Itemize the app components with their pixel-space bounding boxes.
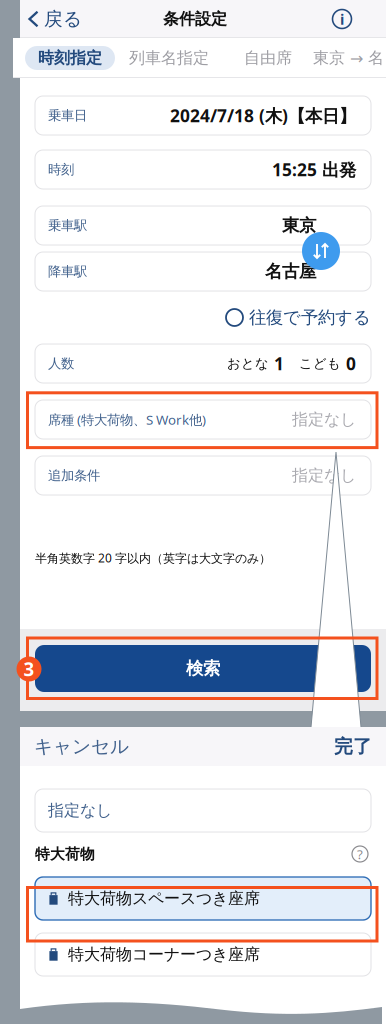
staticText: 自由席	[244, 48, 292, 68]
staticText: 指定なし	[48, 801, 112, 820]
button[interactable]: 完了	[320, 727, 386, 766]
staticText: 特大荷物コーナーつき座席	[68, 945, 260, 964]
staticText: 15:25 出発	[272, 158, 356, 181]
button[interactable]: 列車名指定	[115, 46, 223, 70]
staticText: 検索	[186, 658, 220, 679]
staticText: 戻る	[44, 7, 82, 30]
button[interactable]: 人数	[35, 344, 371, 383]
button[interactable]: 降車駅	[35, 252, 371, 291]
button[interactable]: 乗車日	[35, 96, 371, 135]
staticText: 東京 → 名	[313, 48, 384, 68]
staticText: 乗車日	[48, 107, 87, 124]
button[interactable]: Swap departure and arrival stations	[302, 232, 340, 270]
staticText: 0	[346, 352, 356, 375]
staticText: 名古屋	[265, 261, 316, 282]
staticText: 1	[274, 352, 284, 375]
staticText: おとな	[227, 355, 269, 372]
staticText: i	[340, 9, 344, 29]
staticText: こども	[299, 355, 341, 372]
staticText: 半角英数字 20 字以内（英字は大文字のみ）	[35, 550, 271, 566]
button[interactable]: 東京 → 名	[313, 46, 386, 70]
staticText: 2024/7/18 (木)【本日】	[170, 104, 356, 127]
staticText: 特大荷物	[35, 845, 95, 863]
staticText: 指定なし	[292, 410, 356, 429]
button[interactable]: 特大荷物スペースつき座席	[35, 877, 371, 920]
staticText: 指定なし	[292, 466, 356, 485]
button[interactable]: 戻る	[20, 1, 90, 37]
staticText: 3	[23, 657, 34, 681]
staticText: 列車名指定	[129, 48, 209, 68]
staticText: ?	[357, 845, 363, 863]
button[interactable]: 乗車駅	[35, 206, 371, 245]
staticText: 往復で予約する	[249, 307, 371, 328]
staticText: 席種 (特大荷物、S Work他)	[48, 411, 206, 428]
button[interactable]: 特大荷物コーナーつき座席	[35, 933, 371, 976]
staticText: 時刻指定	[38, 48, 102, 68]
staticText: 乗車駅	[48, 217, 87, 234]
button[interactable]: 追加条件	[35, 456, 371, 495]
button[interactable]: Information	[323, 0, 361, 38]
staticText: 人数	[48, 355, 74, 372]
button[interactable]: Help about oversized baggage	[349, 843, 371, 865]
staticText: 特大荷物スペースつき座席	[68, 889, 260, 908]
staticText: 東京	[282, 215, 316, 236]
button[interactable]: 往復で予約する	[226, 305, 371, 330]
staticText: 条件設定	[163, 9, 227, 29]
button[interactable]: 検索	[35, 645, 371, 692]
button[interactable]: 自由席	[223, 46, 313, 70]
button[interactable]: 時刻	[35, 150, 371, 189]
button[interactable]: キャンセル	[20, 727, 143, 766]
staticText: 時刻	[48, 161, 74, 178]
staticText: 追加条件	[48, 467, 100, 484]
button[interactable]: 指定なし	[35, 789, 371, 832]
staticText: キャンセル	[34, 735, 129, 758]
staticText: 降車駅	[48, 263, 87, 280]
staticText: 完了	[334, 735, 372, 758]
button[interactable]: 席種 (特大荷物、S Work他)	[35, 400, 371, 439]
button[interactable]: 時刻指定	[25, 46, 115, 70]
